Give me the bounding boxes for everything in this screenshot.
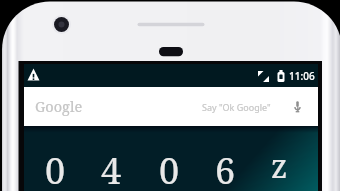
staticText: 4: [101, 146, 122, 191]
button[interactable]: Google: [24, 87, 318, 126]
staticText: 0: [159, 146, 180, 191]
staticText: Google: [35, 96, 83, 116]
button[interactable]: Voice search: [293, 100, 302, 113]
staticText: 6: [215, 146, 236, 191]
staticText: 11:06: [289, 69, 315, 83]
staticText: 0: [45, 146, 66, 191]
staticText: z: [271, 144, 288, 188]
staticText: Say "Ok Google": [202, 101, 271, 113]
